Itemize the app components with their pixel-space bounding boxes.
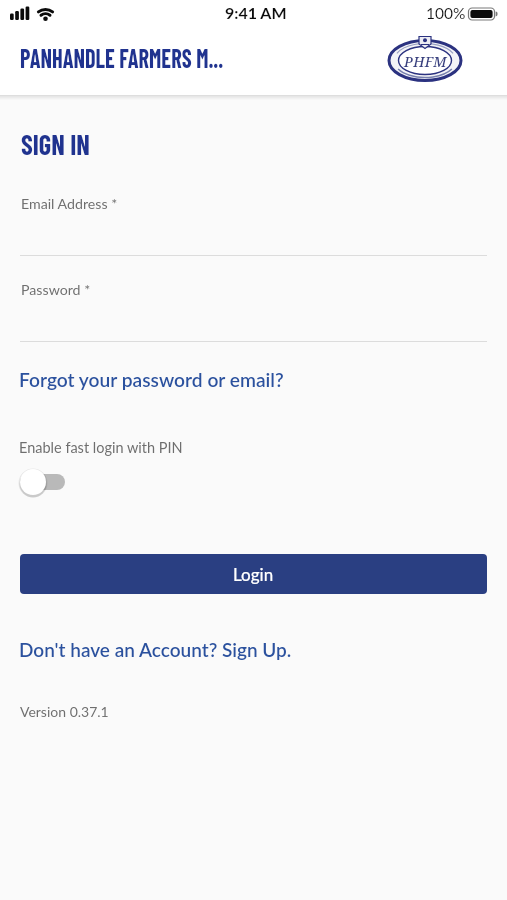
staticText: Forgot your password or email? xyxy=(19,368,284,391)
staticText: 100% xyxy=(426,4,466,23)
button[interactable]: Don't have an Account? Sign Up. xyxy=(19,638,292,661)
staticText: Enable fast login with PIN xyxy=(19,439,183,456)
button[interactable] xyxy=(16,465,68,499)
staticText: Don't have an Account? Sign Up. xyxy=(19,638,292,661)
staticText: PHFM xyxy=(404,52,447,71)
button[interactable]: Login xyxy=(20,554,487,594)
staticText: Email Address * xyxy=(21,195,118,212)
staticText: 9:41 AM xyxy=(225,3,287,22)
staticText: Password * xyxy=(21,281,91,298)
staticText: SIGN IN xyxy=(21,127,90,160)
button[interactable]: Forgot your password or email? xyxy=(19,368,284,391)
staticText: PANHANDLE FARMERS M... xyxy=(20,42,224,74)
staticText: Login xyxy=(233,564,274,584)
button[interactable]: PHFM xyxy=(385,32,465,88)
staticText: Version 0.37.1 xyxy=(20,703,109,720)
button[interactable]: PANHANDLE FARMERS M... xyxy=(20,42,258,76)
